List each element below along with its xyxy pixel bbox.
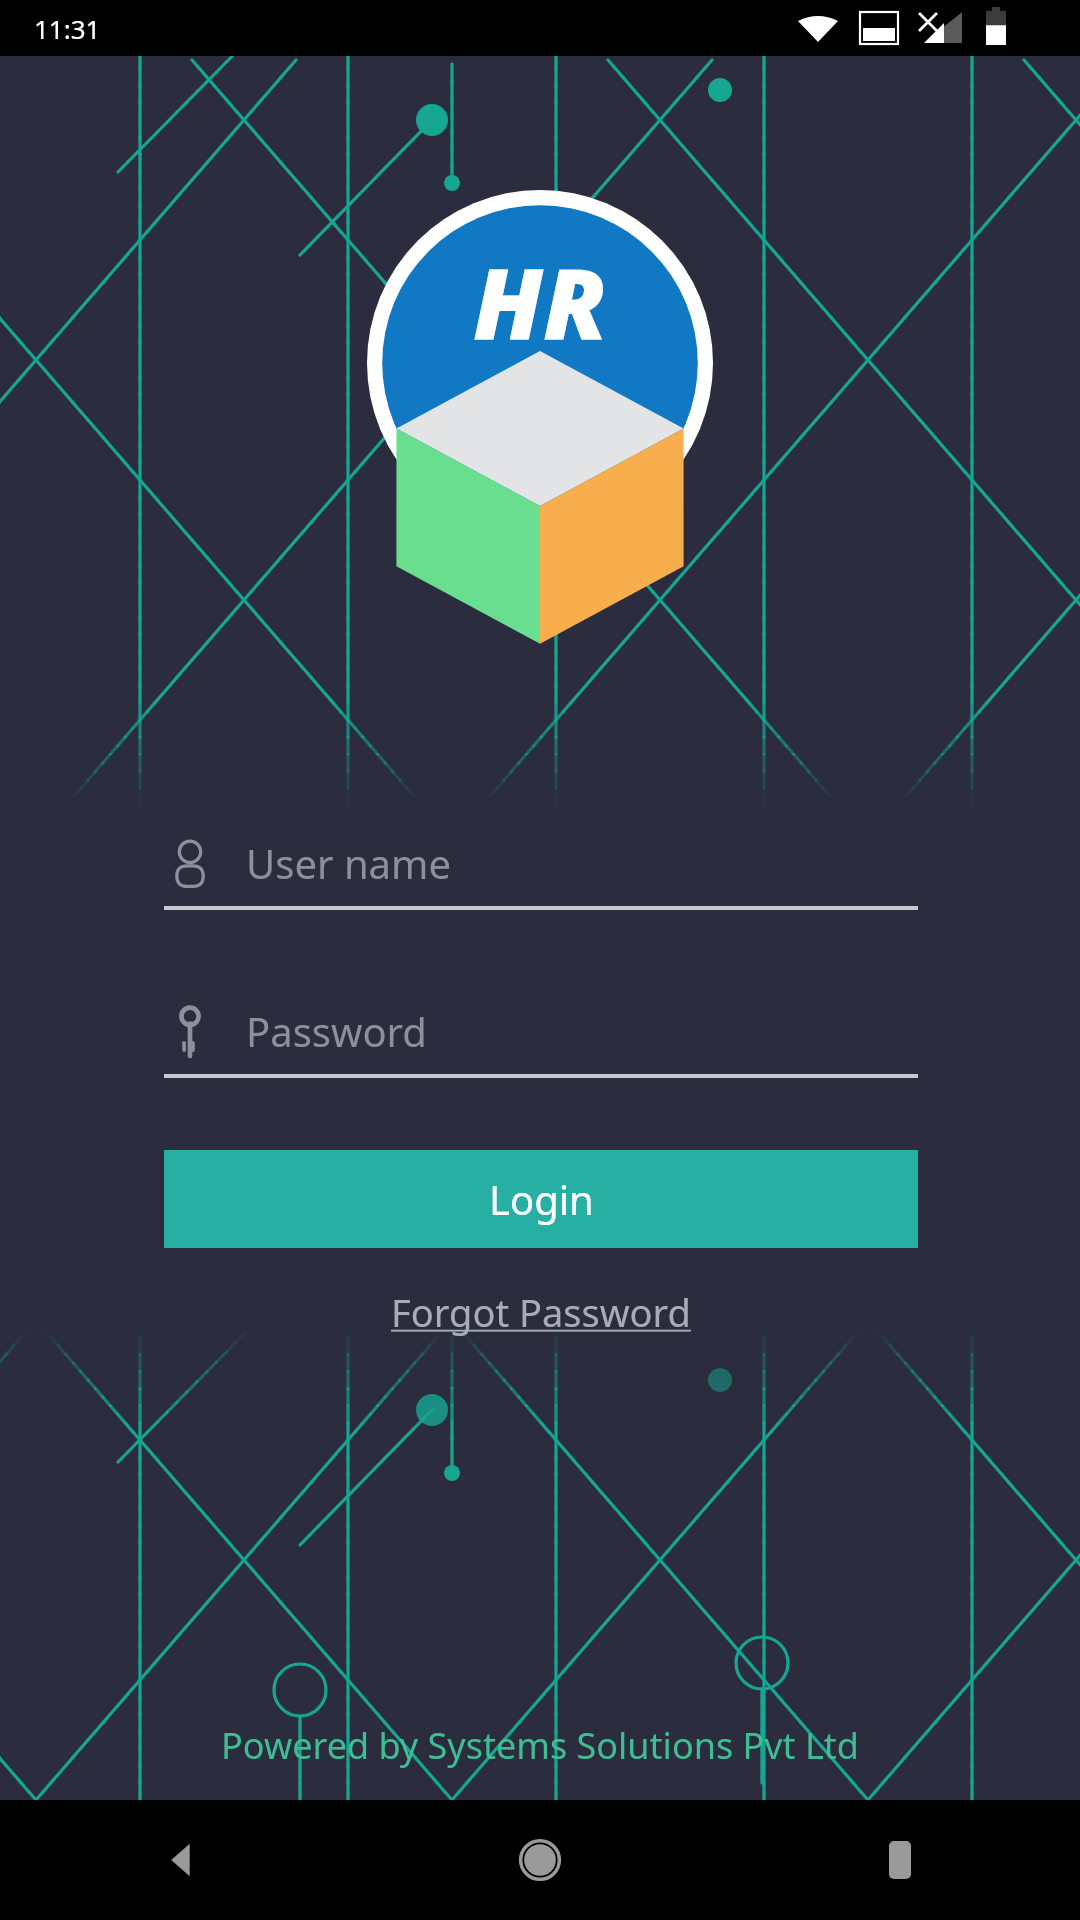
button[interactable]: Home [360,1800,720,1920]
staticText: Powered by Systems Solutions Pvt Ltd [221,1721,859,1770]
staticText: Login [489,1172,594,1226]
button[interactable]: Recent apps [720,1800,1080,1920]
staticText: Password [246,1004,427,1058]
staticText: HR [473,234,607,367]
button[interactable]: Password [164,988,918,1078]
button[interactable]: Back [0,1800,360,1920]
button[interactable]: Forgot Password [383,1280,699,1344]
staticText: 11:31 [34,11,101,46]
button[interactable]: Login [164,1150,918,1248]
staticText: User name [246,836,451,890]
button[interactable]: User name [164,820,918,910]
